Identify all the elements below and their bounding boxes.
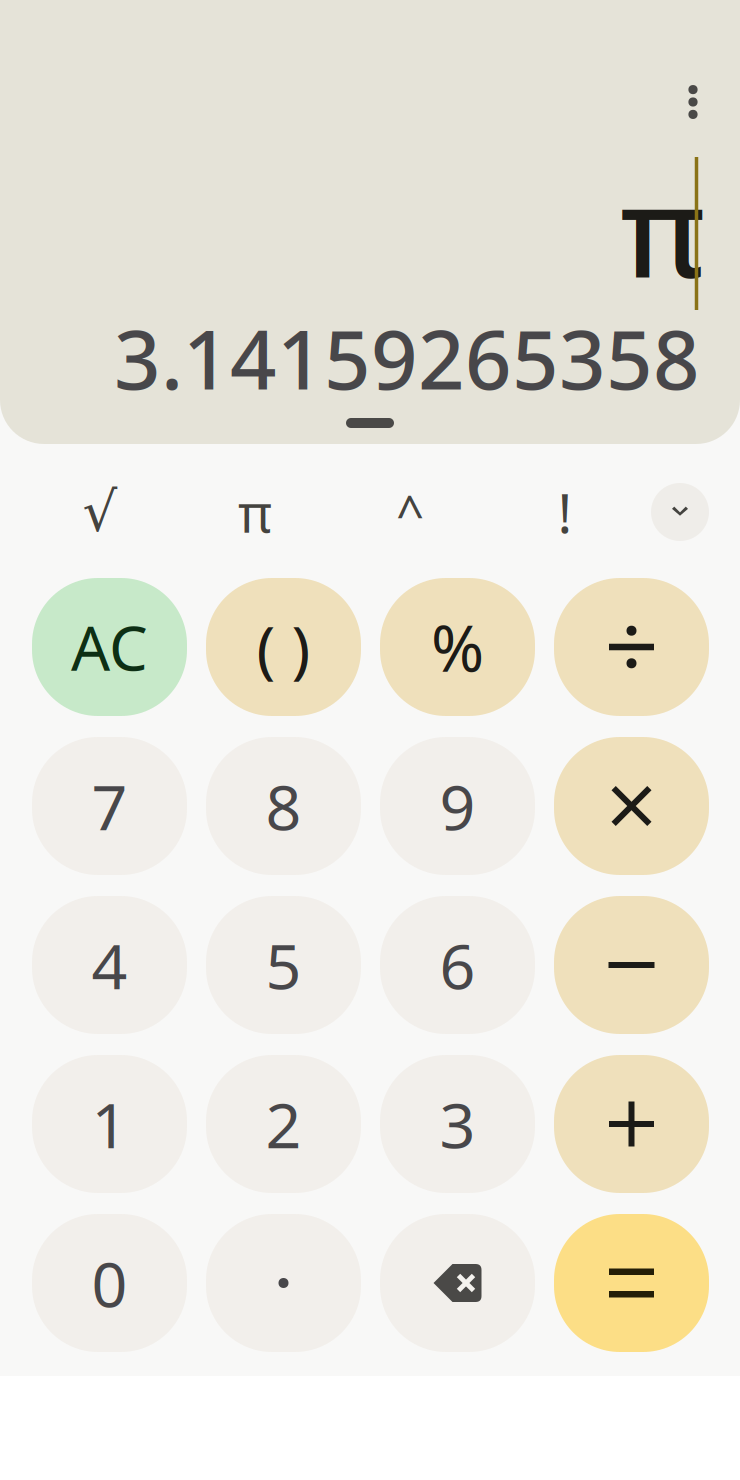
button[interactable]: Decimal point: [206, 1214, 361, 1352]
button[interactable]: More functions: [640, 472, 720, 552]
button[interactable]: 0: [32, 1214, 187, 1352]
button[interactable]: Multiply: [554, 737, 709, 875]
staticText: 8: [265, 764, 301, 848]
staticText: 3.14159265358: [114, 304, 700, 412]
staticText: 3: [439, 1082, 475, 1166]
staticText: !: [557, 476, 572, 548]
button[interactable]: Divide: [554, 578, 709, 716]
staticText: 7: [91, 764, 127, 848]
button[interactable]: AC: [32, 578, 187, 716]
button[interactable]: Equals: [554, 1214, 709, 1352]
staticText: AC: [71, 606, 148, 688]
staticText: %: [431, 604, 484, 689]
staticText: 4: [91, 923, 127, 1007]
button[interactable]: 3: [380, 1055, 535, 1193]
button[interactable]: 9: [380, 737, 535, 875]
button[interactable]: Power: [355, 467, 465, 557]
button[interactable]: 4: [32, 896, 187, 1034]
staticText: 5: [265, 923, 301, 1007]
staticText: 9: [439, 764, 475, 848]
staticText: 0: [91, 1241, 127, 1325]
button[interactable]: 6: [380, 896, 535, 1034]
staticText: π: [238, 477, 272, 547]
staticText: √: [82, 481, 117, 543]
staticText: 2: [265, 1082, 301, 1166]
button[interactable]: 2: [206, 1055, 361, 1193]
button[interactable]: 1: [32, 1055, 187, 1193]
button[interactable]: Factorial: [510, 467, 620, 557]
staticText: 6: [439, 923, 475, 1007]
button[interactable]: Subtract: [554, 896, 709, 1034]
button[interactable]: Backspace: [380, 1214, 535, 1352]
button[interactable]: More options: [663, 67, 723, 137]
button[interactable]: 5: [206, 896, 361, 1034]
button[interactable]: ( ): [206, 578, 361, 716]
staticText: ( ): [256, 605, 310, 689]
staticText: π: [620, 146, 705, 312]
button[interactable]: %: [380, 578, 535, 716]
button[interactable]: Pi: [200, 467, 310, 557]
button[interactable]: 7: [32, 737, 187, 875]
button[interactable]: 8: [206, 737, 361, 875]
staticText: ^: [396, 479, 424, 545]
button[interactable]: Add: [554, 1055, 709, 1193]
button[interactable]: Square root: [45, 467, 155, 557]
staticText: 1: [91, 1082, 127, 1166]
